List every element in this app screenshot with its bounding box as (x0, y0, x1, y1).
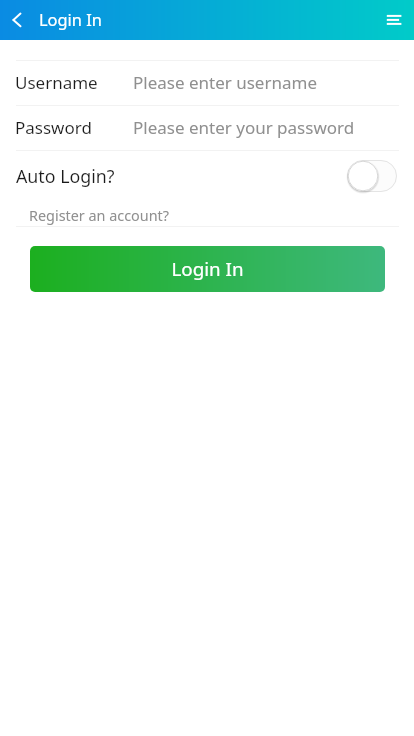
staticText: Login In (39, 8, 102, 30)
staticText: Login In (171, 256, 244, 282)
staticText: Username (15, 71, 98, 94)
staticText: Password (15, 116, 92, 139)
button[interactable]: Auto Login? (0, 153, 414, 199)
button[interactable]: Auto login toggle (347, 160, 397, 192)
button[interactable]: Menu (374, 0, 414, 40)
staticText: Auto Login? (16, 164, 115, 188)
button[interactable]: Login In (30, 246, 385, 292)
button[interactable]: Register an account? (0, 202, 414, 229)
staticText: Please enter username (133, 71, 317, 94)
staticText: Register an account? (29, 206, 170, 226)
staticText: Please enter your password (133, 116, 355, 139)
button[interactable]: Back (0, 0, 34, 40)
button[interactable]: Password (0, 105, 414, 150)
button[interactable]: Username (0, 60, 414, 105)
